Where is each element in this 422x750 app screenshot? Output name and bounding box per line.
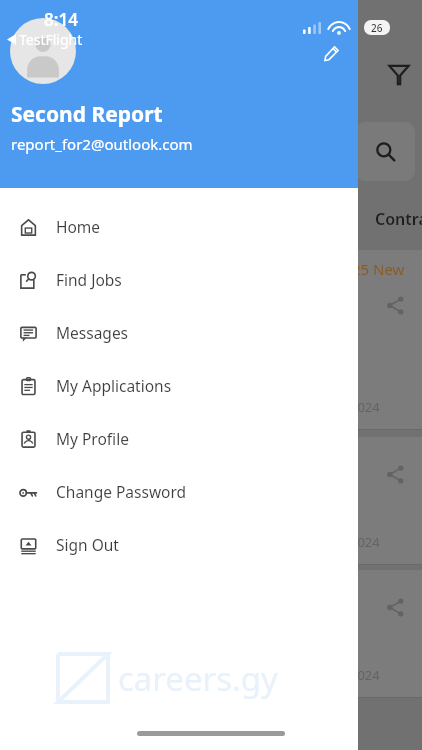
staticText: Second Report	[11, 100, 163, 129]
button[interactable]: Find Jobs	[0, 253, 358, 306]
staticText: Home	[56, 216, 101, 237]
staticText: 2024	[350, 533, 380, 551]
button[interactable]: My Profile	[0, 412, 358, 465]
button[interactable]: Edit profile	[318, 40, 344, 66]
staticText: 2024	[350, 398, 380, 416]
button[interactable]: Sign Out	[0, 518, 358, 571]
staticText: Find Jobs	[56, 269, 122, 290]
staticText: Contract	[375, 208, 422, 230]
button[interactable]: Share	[300, 437, 422, 565]
button[interactable]: Messages	[0, 306, 358, 359]
button[interactable]: Share	[380, 592, 410, 622]
staticText: report_for2@outlook.com	[11, 134, 193, 154]
button[interactable]: Search	[355, 122, 415, 181]
button[interactable]: Home	[0, 200, 358, 253]
button[interactable]: Share	[380, 459, 410, 489]
staticText: 2024	[350, 666, 380, 684]
staticText: TestFlight	[19, 30, 83, 49]
button[interactable]: Share	[380, 290, 410, 320]
staticText: careers.gy	[118, 656, 278, 701]
staticText: Change Password	[56, 481, 187, 502]
staticText: 26	[371, 21, 383, 35]
button[interactable]: Profile photo	[10, 18, 76, 84]
button[interactable]: 25 New	[300, 250, 422, 430]
staticText: Messages	[56, 322, 129, 343]
button[interactable]: Share	[300, 570, 422, 698]
staticText: 8:14	[44, 8, 78, 31]
staticText: 25 New	[352, 259, 405, 279]
button[interactable]: Change Password	[0, 465, 358, 518]
staticText: My Profile	[56, 428, 129, 449]
staticText: My Applications	[56, 375, 172, 396]
button[interactable]: Filter	[382, 57, 416, 91]
button[interactable]: My Applications	[0, 359, 358, 412]
staticText: Sign Out	[56, 534, 119, 555]
